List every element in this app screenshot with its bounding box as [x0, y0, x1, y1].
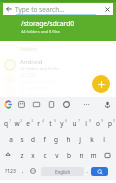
staticText: l: [103, 135, 105, 144]
button[interactable]: x: [27, 147, 39, 163]
staticText: q: [4, 119, 8, 128]
staticText: 4: [42, 119, 44, 123]
staticText: f: [43, 135, 46, 144]
button[interactable]: Comma: [20, 163, 25, 179]
button[interactable]: z: [16, 147, 27, 163]
staticText: m: [90, 151, 97, 160]
button[interactable]: h: [62, 131, 74, 147]
staticText: e: [26, 119, 30, 128]
button[interactable]: a: [5, 131, 16, 147]
staticText: ,: [22, 167, 24, 175]
button[interactable]: o: [92, 115, 104, 131]
button[interactable]: s: [16, 131, 27, 147]
button[interactable]: Backspace: [99, 147, 116, 163]
button[interactable]: q: [0, 115, 11, 131]
button[interactable]: GIF: [28, 98, 44, 110]
button[interactable]: Download: [0, 84, 116, 97]
button[interactable]: p: [104, 115, 116, 131]
staticText: t: [49, 119, 52, 128]
button[interactable]: u: [68, 115, 80, 131]
staticText: d: [31, 135, 35, 144]
staticText: g: [54, 135, 58, 144]
staticText: .: [87, 167, 89, 175]
staticText: 2: [20, 119, 22, 123]
staticText: i: [85, 119, 87, 128]
button[interactable]: English: [41, 167, 84, 176]
staticText: c: [43, 151, 47, 160]
staticText: o: [96, 119, 100, 128]
staticText: 6: [65, 119, 67, 123]
button[interactable]: d: [27, 131, 38, 147]
staticText: u: [72, 119, 77, 128]
staticText: English: [55, 169, 71, 175]
button[interactable]: Shift: [0, 147, 16, 163]
button[interactable]: b: [63, 147, 75, 163]
staticText: p: [108, 119, 112, 128]
button[interactable]: Clear search: [102, 3, 113, 15]
button[interactable]: g: [50, 131, 62, 147]
staticText: Type to search...: [15, 5, 65, 14]
button[interactable]: e: [22, 115, 33, 131]
staticText: /storage/sdcard0: [21, 19, 74, 28]
button[interactable]: l: [98, 131, 110, 147]
button[interactable]: c: [39, 147, 51, 163]
staticText: x: [31, 151, 35, 160]
staticText: 7: [78, 119, 80, 123]
staticText: r: [37, 119, 40, 128]
staticText: 9: [101, 119, 103, 123]
staticText: y: [60, 119, 64, 128]
button[interactable]: DCIM: [0, 71, 116, 84]
staticText: 5: [54, 119, 56, 123]
staticText: 44 folders and 8 files: [21, 29, 60, 34]
button[interactable]: Settings: [59, 98, 74, 110]
staticText: v: [55, 151, 59, 160]
button[interactable]: Clipboard: [44, 98, 59, 110]
button[interactable]: ?123: [0, 163, 20, 179]
button[interactable]: v: [51, 147, 63, 163]
staticText: 1: [9, 119, 11, 123]
button[interactable]: Voice input: [100, 98, 114, 110]
staticText: a: [9, 135, 13, 144]
button[interactable]: m: [87, 147, 99, 163]
staticText: w: [14, 119, 20, 128]
button[interactable]: i: [80, 115, 92, 131]
button[interactable]: f: [38, 131, 50, 147]
button[interactable]: Period: [84, 163, 91, 179]
staticText: h: [66, 135, 71, 144]
button[interactable]: More options: [79, 98, 93, 110]
staticText: k: [90, 135, 94, 144]
other: Back: [3, 3, 15, 15]
staticText: 3: [31, 119, 33, 123]
staticText: j: [79, 135, 81, 144]
staticText: s: [20, 135, 24, 144]
staticText: 12 folders and 0 files: [20, 66, 59, 71]
button[interactable]: r: [33, 115, 44, 131]
button[interactable]: Stickers: [15, 98, 28, 110]
staticText: 0: [113, 119, 115, 123]
staticText: ?123: [5, 168, 16, 175]
staticText: Android: [20, 58, 43, 66]
staticText: 8: [89, 119, 91, 123]
button[interactable]: n: [75, 147, 87, 163]
button[interactable]: Search: [91, 167, 108, 176]
button[interactable]: y: [56, 115, 68, 131]
button[interactable]: j: [74, 131, 86, 147]
button[interactable]: Back: [3, 3, 113, 15]
button[interactable]: Android: [0, 58, 116, 71]
button[interactable]: Emoji: [25, 163, 41, 179]
button[interactable]: Google: [1, 98, 15, 110]
button[interactable]: k: [86, 131, 98, 147]
staticText: Folders: [20, 46, 38, 53]
staticText: n: [79, 151, 84, 160]
button[interactable]: w: [11, 115, 22, 131]
button[interactable]: Add: [92, 75, 110, 93]
button[interactable]: t: [44, 115, 56, 131]
staticText: b: [67, 151, 71, 160]
staticText: z: [20, 151, 24, 160]
